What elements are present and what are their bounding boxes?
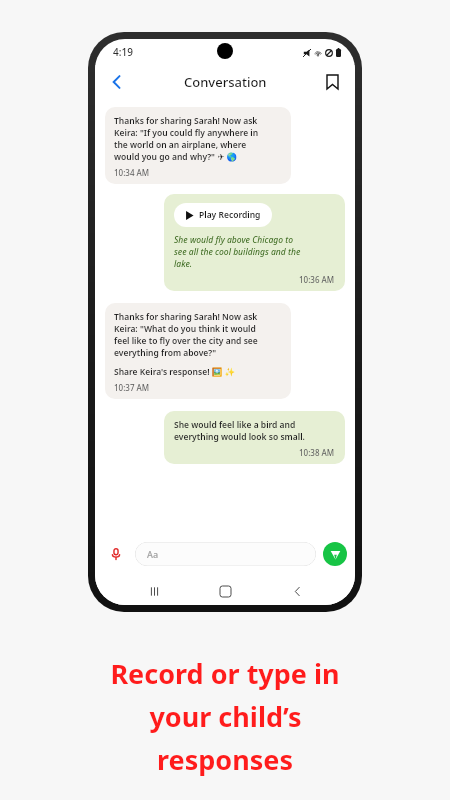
staticText: She would fly above Chicago to: [174, 234, 294, 246]
staticText: Thanks for sharing Sarah! Now ask: [114, 115, 258, 127]
staticText: Thanks for sharing Sarah! Now ask: [114, 311, 258, 323]
staticText: Share Keira's response! 🖼 ✨: [114, 366, 236, 378]
staticText: Play Recording: [199, 209, 261, 221]
button[interactable]: Home: [212, 578, 238, 604]
button[interactable]: Thanks for sharing Sarah! Now ask: [105, 303, 291, 399]
staticText: everything from above?": [114, 347, 217, 359]
staticText: Keira: "If you could fly anywhere in: [114, 127, 259, 139]
button[interactable]: Thanks for sharing Sarah! Now ask: [105, 107, 291, 184]
staticText: feel like to fly over the city and see: [114, 335, 258, 347]
staticText: responses: [157, 741, 293, 778]
staticText: 10:34 AM: [114, 167, 150, 178]
staticText: 10:36 AM: [299, 274, 335, 285]
staticText: 10:37 AM: [114, 382, 150, 393]
staticText: everything would look so small.: [174, 431, 305, 443]
staticText: 4:19: [113, 45, 133, 59]
button[interactable]: Play Recording: [174, 203, 272, 227]
staticText: 10:38 AM: [299, 447, 335, 458]
staticText: Aa: [147, 548, 159, 560]
button[interactable]: Back: [103, 68, 131, 96]
button[interactable]: She would feel like a bird and: [164, 411, 345, 464]
button[interactable]: Send: [323, 542, 347, 566]
staticText: Keira: "What do you think it would: [114, 323, 256, 335]
staticText: lake.: [174, 258, 193, 270]
staticText: Record or type in: [110, 655, 340, 692]
staticText: Conversation: [184, 73, 267, 91]
button[interactable]: Back: [284, 578, 310, 604]
staticText: would you go and why?" ✈ 🌎: [114, 151, 238, 163]
staticText: the world on an airplane, where: [114, 139, 247, 151]
button[interactable]: Bookmark: [319, 69, 345, 95]
button[interactable]: Play Recording: [164, 194, 345, 291]
button[interactable]: Recent apps: [141, 578, 167, 604]
button[interactable]: Record voice message: [103, 541, 129, 567]
staticText: see all the cool buildings and the: [174, 246, 301, 258]
button[interactable]: Aa: [135, 542, 316, 566]
staticText: your child’s: [149, 698, 302, 735]
staticText: She would feel like a bird and: [174, 419, 296, 431]
